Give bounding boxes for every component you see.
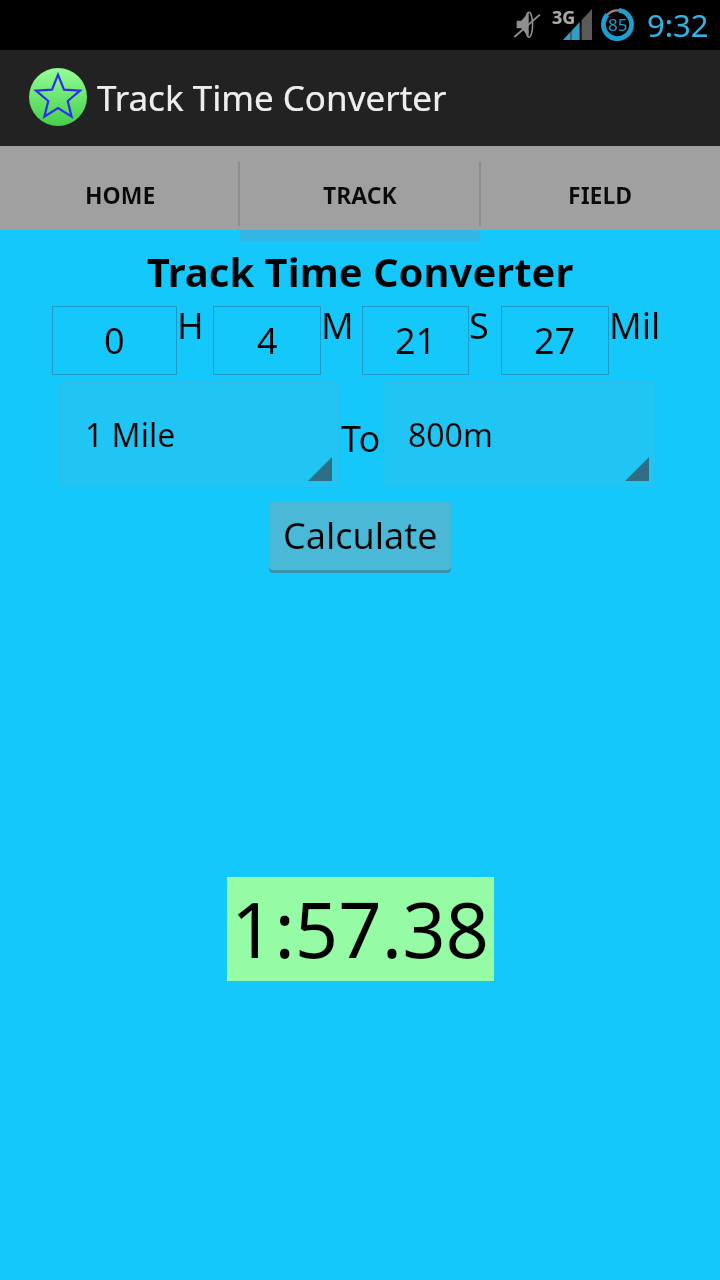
staticText: 800m xyxy=(408,413,493,457)
staticText: S xyxy=(469,301,489,350)
staticText: 27 xyxy=(534,316,576,365)
other: Sound muted xyxy=(513,10,541,39)
other: 3G signal strength xyxy=(551,2,597,46)
staticText: 9:32 xyxy=(647,4,709,46)
staticText: 0 xyxy=(104,316,125,365)
staticText: 3G xyxy=(552,5,576,30)
button[interactable]: 21 xyxy=(362,306,469,375)
staticText: 4 xyxy=(257,316,278,365)
staticText: FIELD xyxy=(568,179,633,210)
staticText: 1:57.38 xyxy=(231,877,490,981)
button[interactable]: TRACK xyxy=(240,146,480,230)
staticText: Track Time Converter xyxy=(0,244,720,298)
staticText: To xyxy=(341,414,381,463)
button[interactable]: 27 xyxy=(501,306,609,375)
button[interactable]: 4 xyxy=(213,306,321,375)
button[interactable]: 1 Mile xyxy=(60,382,339,488)
staticText: M xyxy=(321,301,354,350)
staticText: HOME xyxy=(85,179,156,210)
staticText: 21 xyxy=(395,316,437,365)
button[interactable]: Track Time Converter app icon xyxy=(29,68,87,126)
button[interactable]: Calculate xyxy=(269,501,451,573)
staticText: 85 xyxy=(608,13,628,36)
staticText: Mil xyxy=(609,301,661,350)
staticText: 1 Mile xyxy=(85,413,176,457)
button[interactable]: FIELD xyxy=(480,146,720,230)
staticText: TRACK xyxy=(323,179,397,210)
staticText: H xyxy=(177,301,204,350)
staticText: Calculate xyxy=(283,511,438,560)
button[interactable]: HOME xyxy=(0,146,240,230)
button[interactable]: 0 xyxy=(52,306,177,375)
button[interactable]: 800m xyxy=(383,382,656,488)
staticText: Track Time Converter xyxy=(97,74,447,122)
other: Battery 85 percent xyxy=(601,8,634,41)
